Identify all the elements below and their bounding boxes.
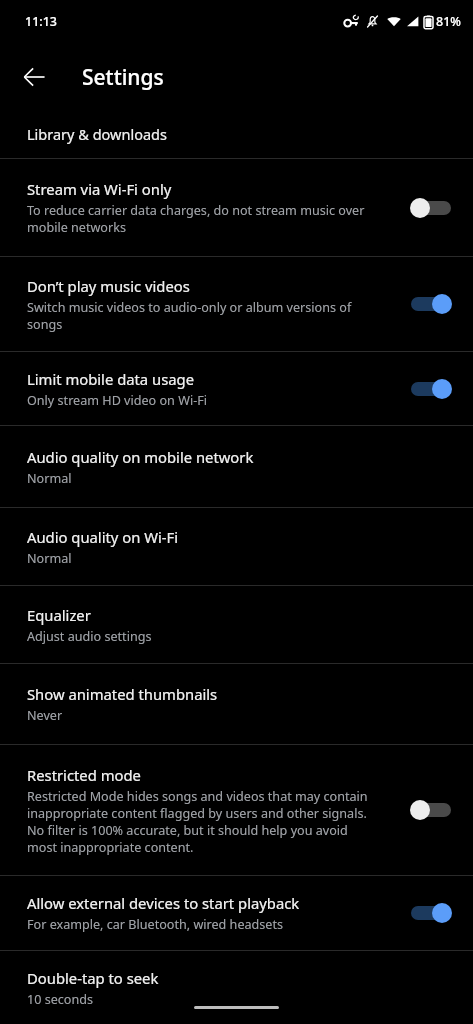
staticText: Library & downloads bbox=[27, 124, 167, 144]
staticText: To reduce carrier data charges, do not s… bbox=[27, 202, 365, 236]
button[interactable]: Allow external devices to start playback bbox=[0, 876, 473, 950]
staticText: Don’t play music videos bbox=[27, 276, 190, 296]
staticText: Show animated thumbnails bbox=[27, 684, 218, 704]
staticText: Only stream HD video on Wi-Fi bbox=[27, 392, 207, 409]
staticText: Switch music videos to audio-only or alb… bbox=[27, 299, 352, 333]
staticText: Audio quality on Wi-Fi bbox=[27, 527, 179, 547]
staticText: Normal bbox=[27, 470, 72, 487]
staticText: Equalizer bbox=[27, 605, 91, 625]
staticText: Settings bbox=[82, 63, 164, 92]
staticText: Double-tap to seek bbox=[27, 968, 159, 988]
button[interactable]: Toggle on bbox=[407, 372, 455, 406]
button[interactable]: Toggle on bbox=[407, 287, 455, 321]
staticText: Stream via Wi-Fi only bbox=[27, 179, 172, 199]
button[interactable]: Back bbox=[10, 53, 58, 101]
staticText: Restricted Mode hides songs and videos t… bbox=[27, 788, 368, 856]
button[interactable]: Equalizer bbox=[0, 586, 473, 663]
button[interactable]: Limit mobile data usage bbox=[0, 352, 473, 425]
button[interactable]: Restricted mode bbox=[0, 745, 473, 875]
staticText: Limit mobile data usage bbox=[27, 369, 194, 389]
staticText: Allow external devices to start playback bbox=[27, 893, 300, 913]
button[interactable]: Toggle on bbox=[407, 896, 455, 930]
button[interactable]: Audio quality on mobile network bbox=[0, 426, 473, 507]
staticText: Never bbox=[27, 707, 63, 724]
staticText: Audio quality on mobile network bbox=[27, 447, 254, 467]
staticText: 10 seconds bbox=[27, 991, 94, 1008]
staticText: Restricted mode bbox=[27, 765, 141, 785]
button[interactable]: Show animated thumbnails bbox=[0, 664, 473, 744]
staticText: Normal bbox=[27, 550, 72, 567]
button[interactable]: Audio quality on Wi-Fi bbox=[0, 508, 473, 585]
staticText: 11:13 bbox=[25, 13, 58, 30]
button[interactable]: Double-tap to seek bbox=[0, 951, 473, 1024]
button[interactable]: Stream via Wi-Fi only bbox=[0, 159, 473, 256]
button[interactable]: Don’t play music videos bbox=[0, 257, 473, 351]
button[interactable]: Toggle off bbox=[407, 793, 455, 827]
staticText: For example, car Bluetooth, wired headse… bbox=[27, 916, 284, 933]
button[interactable]: Toggle off bbox=[407, 191, 455, 225]
staticText: Adjust audio settings bbox=[27, 628, 152, 645]
staticText: 81% bbox=[436, 13, 461, 30]
